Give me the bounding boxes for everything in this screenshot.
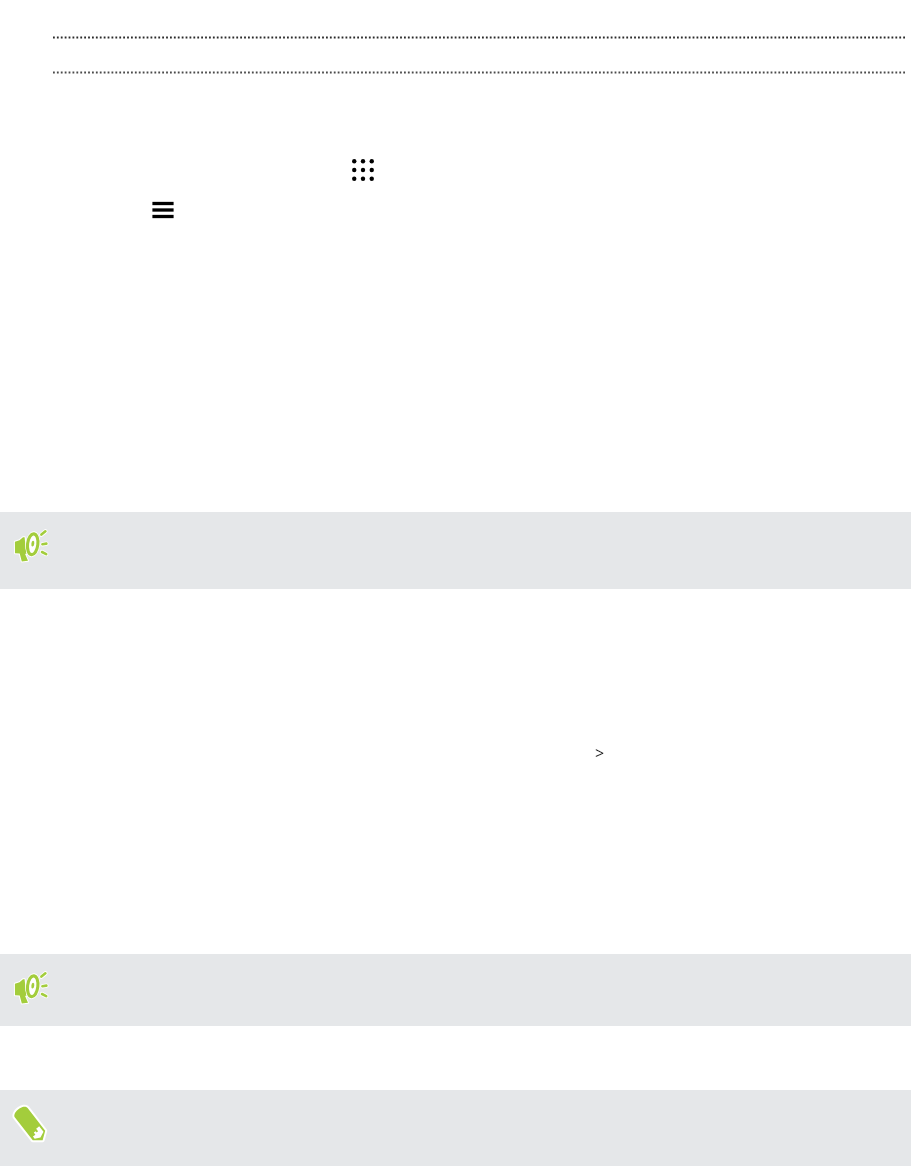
staticText: > [595, 742, 605, 764]
button[interactable]: Next [588, 741, 612, 765]
button[interactable]: Announcement [0, 512, 911, 589]
button[interactable]: Menu [148, 195, 178, 225]
button[interactable]: Edit [0, 1090, 911, 1166]
button[interactable]: Announcement [0, 954, 911, 1026]
button[interactable]: Apps [348, 155, 378, 185]
